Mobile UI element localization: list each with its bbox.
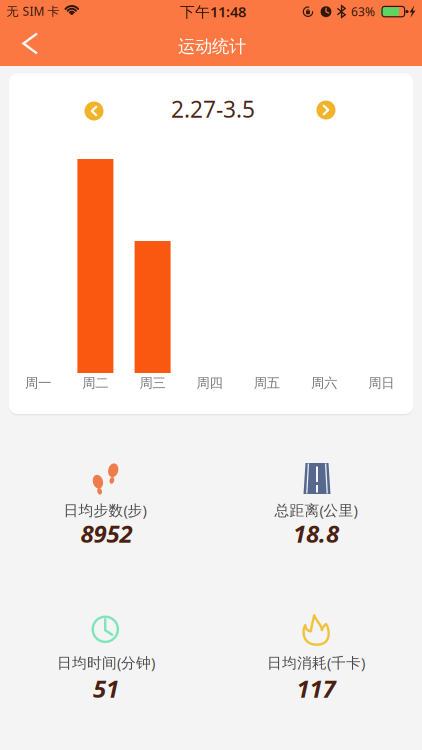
- staticText: 总距离(公里): [274, 500, 357, 520]
- button[interactable]: Previous week: [81, 98, 107, 124]
- staticText: 117: [296, 673, 335, 704]
- staticText: 周一: [25, 375, 51, 391]
- staticText: 63%: [351, 3, 375, 19]
- staticText: 51: [93, 673, 119, 704]
- staticText: 日均时间(分钟): [57, 653, 155, 672]
- staticText: 8952: [80, 518, 132, 549]
- staticText: 日均步数(步): [63, 500, 146, 520]
- staticText: 2.27-3.5: [171, 94, 255, 124]
- staticText: 下午11:48: [180, 2, 246, 21]
- staticText: 周六: [311, 375, 337, 391]
- staticText: 18.8: [293, 518, 339, 549]
- button[interactable]: Back: [0, 22, 50, 66]
- staticText: 无 SIM 卡: [6, 3, 59, 19]
- staticText: 日均消耗(千卡): [267, 653, 365, 672]
- staticText: 运动统计: [178, 36, 246, 57]
- staticText: 周二: [82, 375, 108, 391]
- staticText: 周四: [197, 375, 223, 391]
- button[interactable]: Next week: [313, 97, 339, 123]
- staticText: 周日: [368, 375, 394, 391]
- staticText: 周五: [254, 375, 280, 391]
- staticText: 周三: [139, 375, 165, 391]
